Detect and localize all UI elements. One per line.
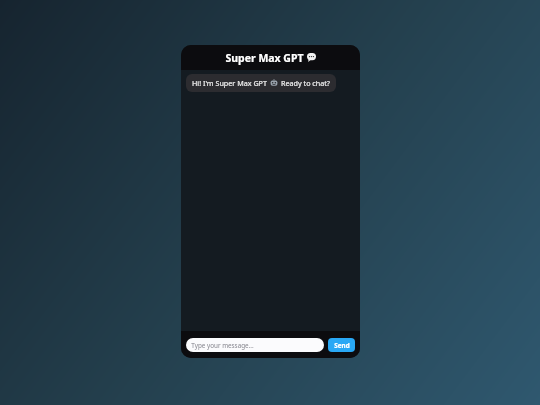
staticText: Type your message... [191,341,254,350]
staticText: Hi! I'm Super Max GPT [192,78,267,88]
button[interactable]: Send [328,338,355,352]
staticText: Ready to chat? [281,78,330,88]
other: Robot [270,79,278,87]
button[interactable]: Hi! I'm Super Max GPT [186,74,336,92]
button[interactable]: Type your message... [186,338,324,352]
staticText: Send [334,341,350,350]
button[interactable]: Super Max GPT [181,45,360,70]
staticText: Super Max GPT [225,51,304,65]
other: Chat bubble [307,53,316,62]
